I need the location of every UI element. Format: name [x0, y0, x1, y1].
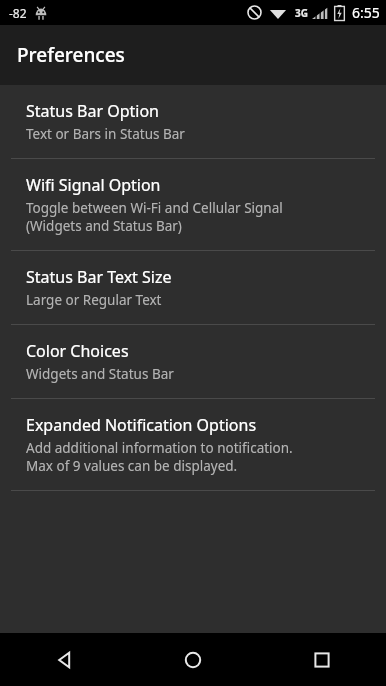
button[interactable]: Status Bar Text Size [0, 251, 386, 324]
staticText: -82 [9, 5, 27, 21]
staticText: Expanded Notification Options [26, 414, 257, 436]
button[interactable]: Back [0, 633, 128, 686]
button[interactable]: Recents [257, 633, 386, 686]
button[interactable]: Expanded Notification Options [0, 399, 386, 490]
button[interactable]: Color Choices [0, 325, 386, 398]
staticText: 6:55 [352, 3, 380, 22]
other: Do not disturb [247, 5, 262, 20]
button[interactable]: Wifi Signal Option [0, 159, 386, 250]
button[interactable]: Home [128, 633, 257, 686]
staticText: Widgets and Status Bar [26, 365, 174, 383]
staticText: Color Choices [26, 340, 129, 362]
button[interactable]: Status Bar Option [0, 85, 386, 158]
staticText: Max of 9 values can be displayed. [26, 457, 238, 475]
staticText: Add additional information to notificati… [26, 439, 293, 457]
staticText: Toggle between Wi-Fi and Cellular Signal [26, 199, 283, 217]
staticText: Wifi Signal Option [26, 174, 161, 196]
staticText: Large or Regular Text [26, 291, 162, 309]
staticText: Text or Bars in Status Bar [26, 125, 185, 143]
staticText: Status Bar Option [26, 100, 159, 122]
staticText: Status Bar Text Size [26, 266, 172, 288]
staticText: (Widgets and Status Bar) [26, 217, 182, 235]
staticText: Preferences [17, 42, 125, 68]
staticText: 3G [295, 6, 308, 20]
